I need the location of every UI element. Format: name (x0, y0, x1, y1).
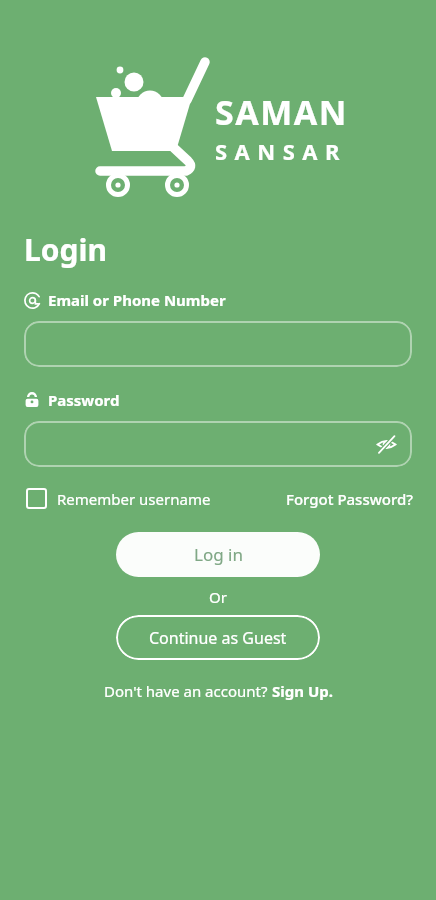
staticText: Or (0, 587, 436, 607)
staticText: Continue as Guest (149, 627, 287, 649)
button[interactable]: Log in (116, 532, 320, 577)
button[interactable]: Continue as Guest (116, 615, 320, 660)
staticText: Don't have an account? (104, 681, 272, 701)
staticText: Password (48, 390, 120, 410)
staticText: Remember username (57, 489, 211, 509)
staticText: Login (24, 229, 107, 270)
staticText: Forgot Password? (286, 489, 414, 509)
staticText: SANSAR (215, 136, 348, 166)
button[interactable]: Remember username (26, 488, 211, 509)
button[interactable]: Show password (371, 429, 401, 459)
staticText: Email or Phone Number (48, 290, 226, 310)
button[interactable]: Sign Up. (272, 681, 333, 701)
staticText: SAMAN (215, 89, 348, 135)
staticText: Sign Up. (272, 681, 333, 701)
button[interactable]: Password field (24, 421, 412, 467)
button[interactable]: Email or Phone Number field (24, 321, 412, 367)
staticText: Log in (194, 543, 243, 566)
button[interactable]: Forgot Password? (286, 489, 414, 509)
